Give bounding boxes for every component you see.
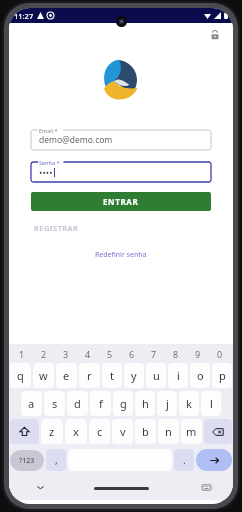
staticText: Redefinir senha (95, 250, 147, 260)
staticText: 9 (195, 348, 201, 360)
button[interactable]: n (158, 419, 179, 444)
staticText: m (186, 424, 197, 439)
staticText: 7 (151, 348, 157, 360)
staticText: y (131, 368, 137, 383)
button[interactable]: w (33, 363, 54, 388)
button[interactable]: c (89, 419, 110, 444)
button[interactable]: t (102, 363, 122, 388)
button[interactable]: 6 (121, 347, 143, 361)
staticText: 11:27 (14, 11, 34, 21)
button[interactable]: m (181, 419, 202, 444)
button[interactable]: q (10, 363, 31, 388)
button[interactable]: Backspace (204, 419, 232, 444)
staticText: a (28, 396, 35, 411)
staticText: 0 (217, 348, 223, 360)
button[interactable]: r (79, 363, 100, 388)
staticText: i (177, 368, 180, 383)
button[interactable]: k (179, 391, 199, 416)
staticText: 3 (63, 348, 69, 360)
staticText: q (17, 368, 24, 383)
staticText: n (165, 424, 172, 439)
button[interactable]: Shift (10, 419, 39, 444)
staticText: 1 (19, 348, 25, 360)
staticText: k (186, 396, 192, 411)
button[interactable]: Enter (196, 449, 232, 471)
staticText: w (39, 368, 48, 383)
button[interactable]: 1 (11, 347, 33, 361)
staticText: 6 (129, 348, 135, 360)
staticText: v (120, 424, 126, 439)
staticText: ENTRAR (103, 196, 139, 207)
staticText: . (183, 453, 186, 467)
button[interactable]: 4 (77, 347, 99, 361)
button[interactable]: u (146, 363, 166, 388)
staticText: g (120, 396, 127, 411)
button[interactable]: ENTRAR (31, 192, 211, 211)
button[interactable]: REGISTRAR (31, 220, 211, 236)
staticText: 5 (107, 348, 113, 360)
button[interactable]: 9 (187, 347, 209, 361)
staticText: Email * (39, 127, 58, 134)
staticText: o (197, 368, 204, 383)
button[interactable]: i (168, 363, 188, 388)
staticText: u (153, 368, 160, 383)
button[interactable]: 7 (143, 347, 165, 361)
staticText: t (110, 368, 114, 383)
button[interactable]: a (21, 391, 42, 416)
button[interactable]: . (174, 449, 194, 471)
staticText: f (99, 396, 103, 411)
staticText: s (52, 396, 58, 411)
button[interactable]: j (157, 391, 177, 416)
staticText: Senha * (39, 159, 60, 166)
staticText: , (55, 453, 58, 467)
staticText: r (87, 368, 92, 383)
staticText: demo@demo.com (39, 134, 113, 146)
staticText: h (142, 396, 149, 411)
button[interactable]: l (201, 391, 221, 416)
button[interactable]: Locked (206, 26, 224, 44)
button[interactable]: ?123 (10, 450, 44, 471)
button[interactable]: f (90, 391, 111, 416)
button[interactable]: 0 (209, 347, 231, 361)
button[interactable]: Email * (31, 126, 211, 150)
button[interactable]: x (65, 419, 87, 444)
staticText: REGISTRAR (34, 223, 79, 233)
button[interactable]: p (212, 363, 232, 388)
button[interactable]: g (113, 391, 133, 416)
button[interactable]: y (124, 363, 144, 388)
button[interactable]: 5 (99, 347, 121, 361)
button[interactable]: d (67, 391, 88, 416)
button[interactable]: Back (33, 480, 47, 494)
button[interactable]: b (135, 419, 156, 444)
staticText: x (73, 424, 79, 439)
button[interactable]: z (41, 419, 63, 444)
staticText: •••• (39, 166, 53, 178)
staticText: b (142, 424, 149, 439)
button[interactable]: s (44, 391, 65, 416)
button[interactable]: , (46, 449, 66, 471)
staticText: e (63, 368, 70, 383)
staticText: c (97, 424, 103, 439)
button[interactable]: 2 (33, 347, 55, 361)
staticText: ?123 (19, 456, 35, 466)
button[interactable]: e (56, 363, 77, 388)
button[interactable]: o (190, 363, 210, 388)
staticText: 2 (41, 348, 47, 360)
staticText: j (166, 396, 169, 411)
button[interactable]: v (112, 419, 133, 444)
button[interactable]: Senha * (31, 158, 211, 182)
staticText: p (219, 368, 226, 383)
staticText: 8 (173, 348, 179, 360)
button[interactable]: h (135, 391, 155, 416)
button[interactable]: 3 (55, 347, 77, 361)
staticText: l (210, 396, 213, 411)
button[interactable]: Change keyboard (199, 480, 213, 494)
button[interactable]: Redefinir senha (31, 248, 211, 262)
staticText: z (49, 424, 55, 439)
button[interactable]: 8 (165, 347, 187, 361)
staticText: 4 (85, 348, 91, 360)
staticText: d (74, 396, 81, 411)
